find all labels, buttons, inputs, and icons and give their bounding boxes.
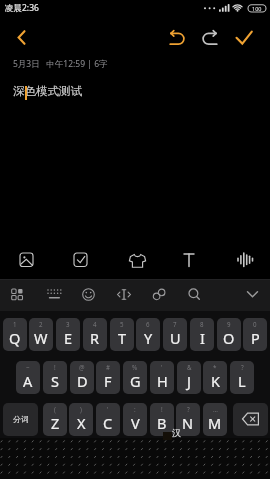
staticText: 6 <box>146 320 150 328</box>
staticText: E <box>64 328 73 348</box>
staticText: 汉 <box>172 427 181 438</box>
button[interactable]: 6 <box>136 318 160 351</box>
button[interactable] <box>118 245 155 273</box>
button[interactable]: * <box>203 361 227 394</box>
staticText: ( <box>54 405 56 413</box>
button[interactable] <box>8 245 45 273</box>
staticText: 深色模式测试 <box>13 84 82 98</box>
staticText: 分词 <box>13 414 29 424</box>
staticText: D <box>77 371 88 391</box>
staticText: & <box>187 363 192 371</box>
button[interactable]: ~ <box>16 361 40 394</box>
staticText: ~ <box>26 363 30 371</box>
staticText: ) <box>80 405 82 413</box>
staticText: F <box>104 371 112 391</box>
button[interactable]: ( <box>43 403 67 436</box>
staticText: ? <box>187 405 190 413</box>
staticText: R <box>90 328 100 348</box>
staticText: 5月3日 中午12:59 | 6字 <box>13 58 108 70</box>
button[interactable]: # <box>96 361 120 394</box>
button[interactable]: 4 <box>83 318 107 351</box>
staticText: V <box>131 413 140 433</box>
staticText: C <box>103 413 113 433</box>
staticText: 9 <box>227 320 231 328</box>
staticText: L <box>238 371 246 391</box>
button[interactable] <box>8 22 38 52</box>
button[interactable]: @ <box>70 361 94 394</box>
button[interactable]: 5 <box>110 318 134 351</box>
button[interactable]: … <box>203 403 227 436</box>
button[interactable]: : <box>123 403 147 436</box>
staticText: ' <box>161 363 163 371</box>
button[interactable]: ! <box>150 403 174 436</box>
staticText: K <box>211 371 220 391</box>
button[interactable] <box>162 22 192 52</box>
button[interactable]: % <box>123 361 147 394</box>
button[interactable] <box>226 245 263 273</box>
staticText: J <box>187 371 191 391</box>
button[interactable]: ) <box>69 403 93 436</box>
staticText: I <box>200 328 205 348</box>
button[interactable] <box>145 281 174 308</box>
button[interactable] <box>180 281 209 308</box>
staticText: % <box>132 363 138 371</box>
button[interactable] <box>110 281 139 308</box>
button[interactable]: 0 <box>243 318 267 351</box>
staticText: 5 <box>120 320 124 328</box>
button[interactable]: 1 <box>3 318 27 351</box>
button[interactable] <box>229 22 259 52</box>
button[interactable] <box>233 403 268 436</box>
staticText: ? <box>241 363 244 371</box>
staticText: 0 <box>253 320 257 328</box>
staticText: P <box>251 328 260 348</box>
staticText: # <box>106 363 110 371</box>
button[interactable] <box>195 22 225 52</box>
staticText: T <box>118 328 127 348</box>
staticText: ! <box>161 405 163 413</box>
button[interactable]: 7 <box>163 318 187 351</box>
staticText: @ <box>79 363 85 371</box>
staticText: S <box>51 371 59 391</box>
button[interactable]: 8 <box>190 318 214 351</box>
staticText: 7 <box>173 320 177 328</box>
staticText: Z <box>51 413 60 433</box>
button[interactable]: 3 <box>56 318 80 351</box>
button[interactable]: ! <box>43 361 67 394</box>
button[interactable]: 2 <box>29 318 53 351</box>
staticText: … <box>213 405 218 413</box>
staticText: 100 <box>252 5 262 12</box>
staticText: Y <box>144 328 153 348</box>
button[interactable]: ? <box>230 361 254 394</box>
staticText: ! <box>54 363 56 371</box>
button[interactable] <box>62 245 99 273</box>
button[interactable]: ? <box>176 403 200 436</box>
staticText: W <box>34 328 48 348</box>
staticText: 凌晨2:36 <box>5 2 39 14</box>
button[interactable] <box>2 281 31 308</box>
staticText: N <box>182 413 194 433</box>
staticText: G <box>130 371 141 391</box>
button[interactable]: & <box>177 361 201 394</box>
staticText: M <box>208 413 222 433</box>
button[interactable]: 9 <box>217 318 241 351</box>
staticText: Q <box>9 328 21 348</box>
staticText: 8 <box>200 320 204 328</box>
button[interactable] <box>171 245 208 273</box>
button[interactable] <box>74 281 103 308</box>
staticText: * <box>213 363 217 371</box>
staticText: 1 <box>13 320 17 328</box>
staticText: H <box>157 371 168 391</box>
button[interactable] <box>238 281 267 308</box>
staticText: X <box>77 413 86 433</box>
staticText: U <box>170 328 181 348</box>
button[interactable]: ' <box>96 403 120 436</box>
staticText: B <box>157 413 167 433</box>
staticText: 4 <box>93 320 97 328</box>
staticText: : <box>134 405 136 413</box>
staticText: 2 <box>39 320 43 328</box>
staticText: O <box>223 328 235 348</box>
button[interactable] <box>40 281 69 308</box>
button[interactable]: 分词 <box>3 403 38 436</box>
button[interactable]: ' <box>150 361 174 394</box>
staticText: ' <box>107 405 109 413</box>
